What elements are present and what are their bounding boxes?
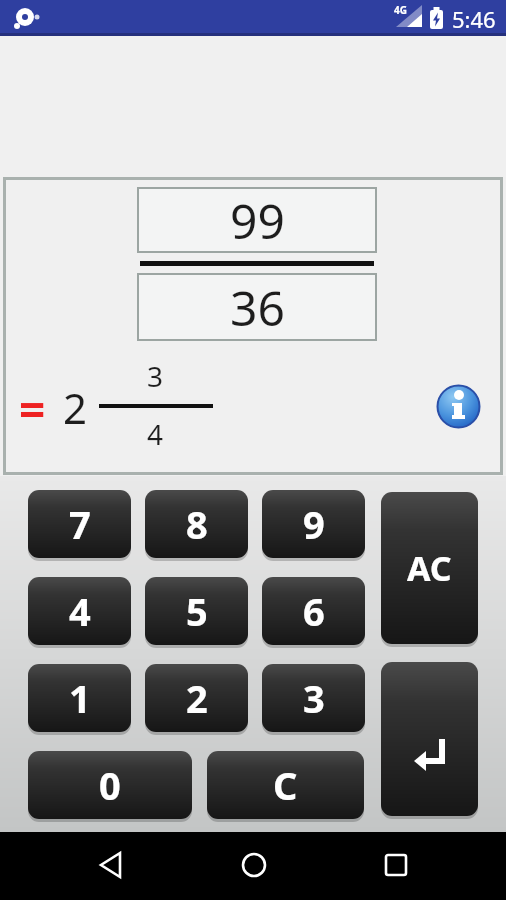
staticText: 99 xyxy=(230,188,285,253)
staticText: 3 xyxy=(147,357,164,395)
staticText: 5 xyxy=(186,585,208,637)
staticText: C xyxy=(273,759,298,811)
button[interactable]: 4 xyxy=(28,577,131,645)
staticText: 9 xyxy=(303,498,325,550)
button[interactable] xyxy=(436,384,481,429)
staticText: 3 xyxy=(303,672,325,724)
staticText: 7 xyxy=(69,498,91,550)
staticText: 4 xyxy=(69,585,91,637)
button[interactable]: 9 xyxy=(262,490,365,558)
button[interactable] xyxy=(381,662,478,816)
button[interactable]: 36 xyxy=(137,273,377,341)
staticText: = xyxy=(19,378,46,441)
button[interactable] xyxy=(96,848,130,882)
staticText: 2 xyxy=(63,379,88,436)
button[interactable]: 8 xyxy=(145,490,248,558)
staticText: 5:46 xyxy=(452,4,496,34)
button[interactable]: 2 xyxy=(145,664,248,732)
button[interactable]: 99 xyxy=(137,187,377,253)
staticText: 4 xyxy=(147,415,164,453)
button[interactable]: AC xyxy=(381,492,478,644)
staticText: 4G xyxy=(394,3,407,17)
button[interactable] xyxy=(237,848,271,882)
button[interactable]: 6 xyxy=(262,577,365,645)
staticText: 36 xyxy=(230,275,285,340)
staticText: 8 xyxy=(186,498,208,550)
staticText: AC xyxy=(407,545,452,591)
staticText: 2 xyxy=(186,672,208,724)
button[interactable]: 1 xyxy=(28,664,131,732)
button[interactable]: 7 xyxy=(28,490,131,558)
staticText: 0 xyxy=(99,759,121,811)
button[interactable]: 0 xyxy=(28,751,192,819)
button[interactable]: 5 xyxy=(145,577,248,645)
button[interactable]: 3 xyxy=(262,664,365,732)
staticText: 1 xyxy=(69,672,91,724)
button[interactable] xyxy=(379,848,413,882)
button[interactable]: C xyxy=(207,751,364,819)
staticText: 6 xyxy=(303,585,325,637)
